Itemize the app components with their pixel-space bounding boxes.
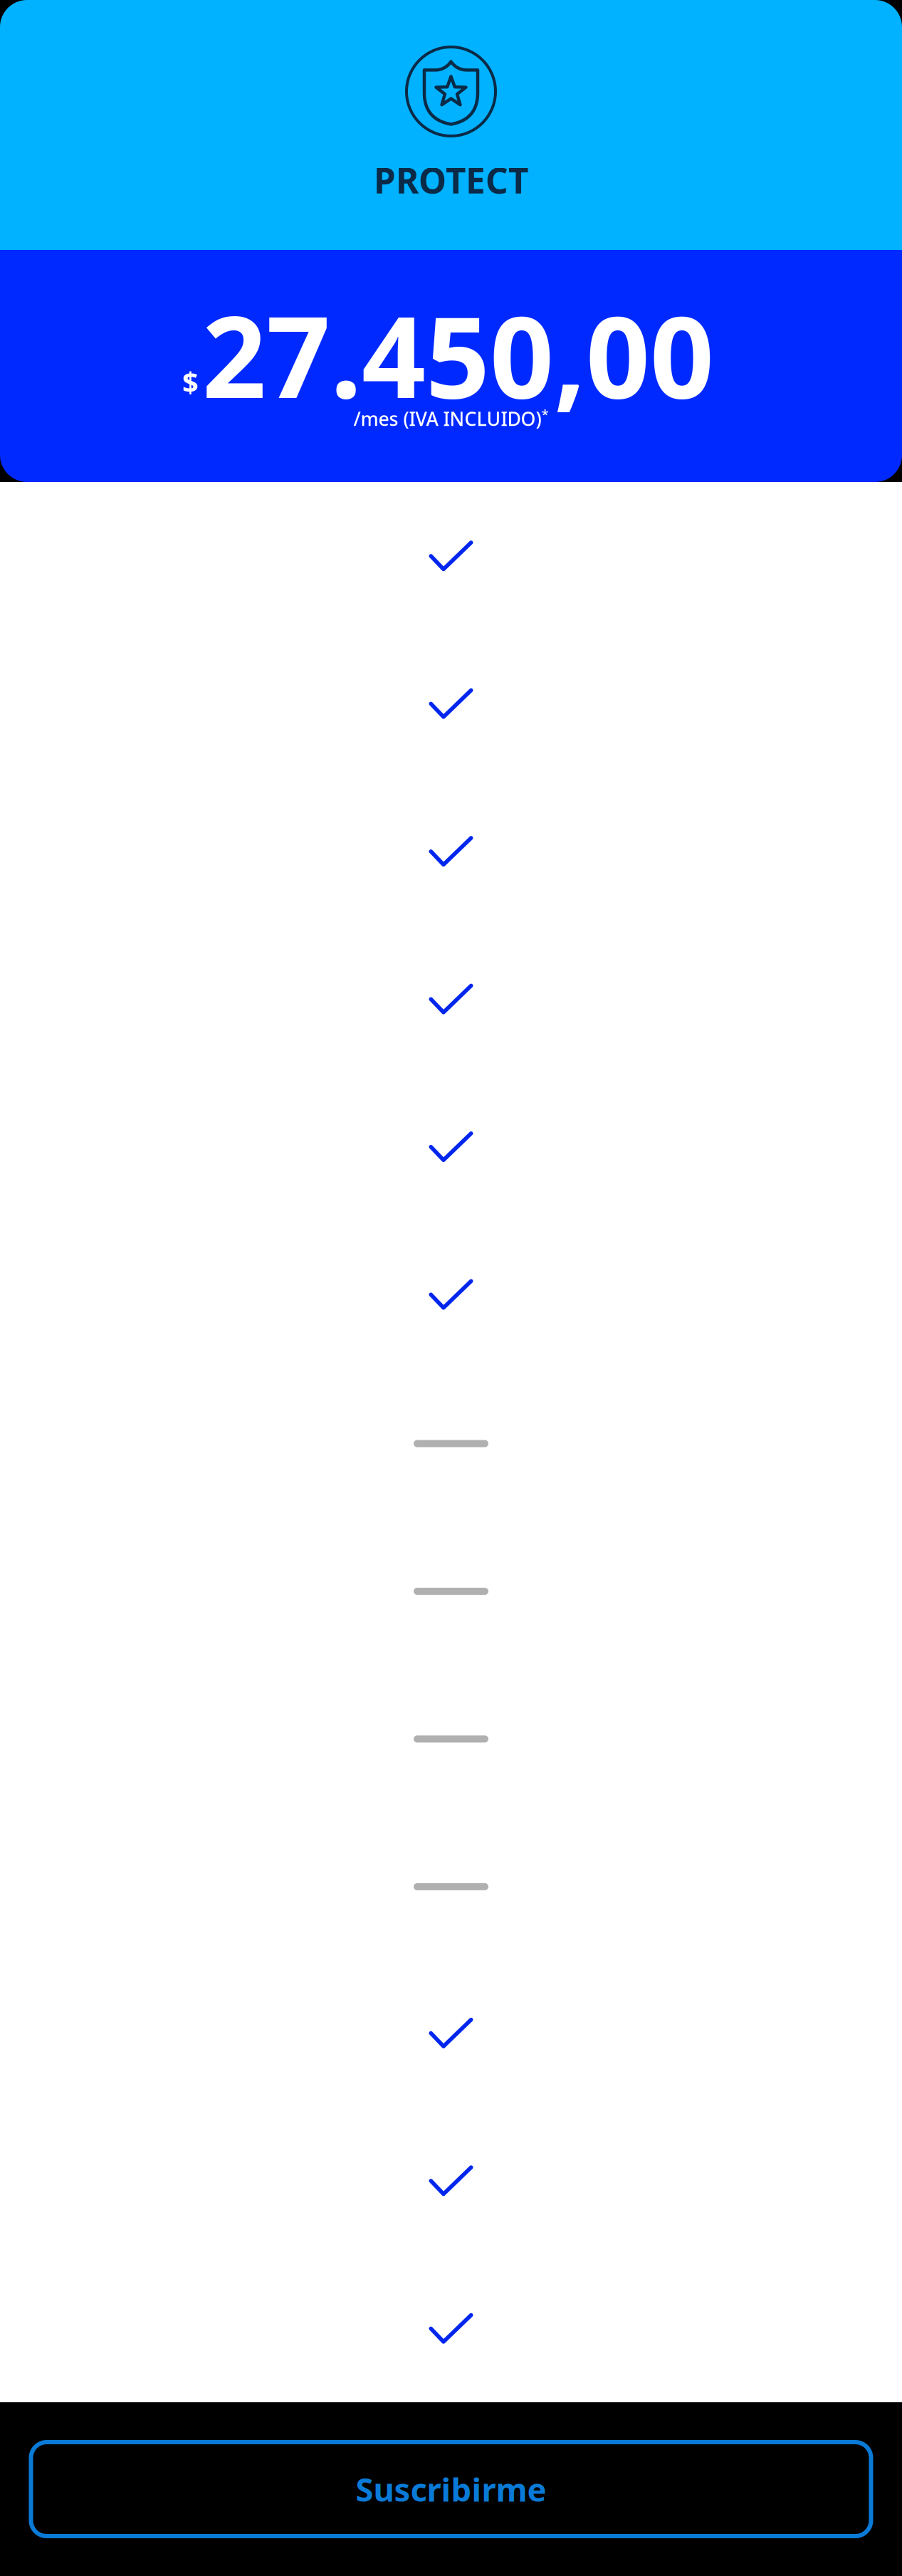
staticText: $	[182, 363, 199, 400]
staticText: PROTECT	[374, 156, 528, 203]
staticText: 27.450,00	[202, 280, 714, 429]
button[interactable]: Suscribirme	[29, 2440, 873, 2538]
staticText: *	[541, 405, 549, 423]
staticText: /mes (IVA INCLUIDO)	[353, 406, 541, 431]
staticText: Suscribirme	[356, 2468, 546, 2511]
